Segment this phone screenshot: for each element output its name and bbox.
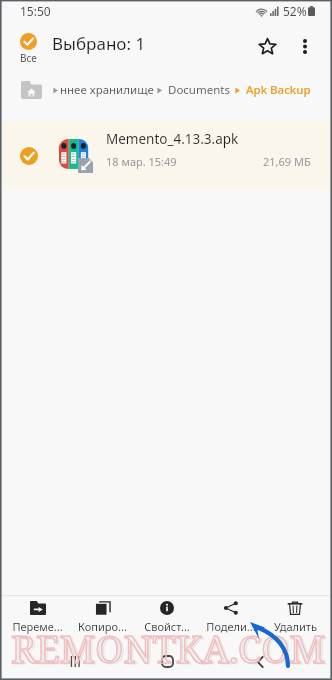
staticText: 18 мар. 15:49 xyxy=(106,154,177,169)
staticText: 15:50 xyxy=(20,3,51,19)
button[interactable]: Recent apps xyxy=(29,646,121,677)
staticText: Свойст... xyxy=(144,619,190,634)
button[interactable]: ннее хранилище xyxy=(60,82,154,98)
button[interactable]: Все xyxy=(12,33,45,65)
button[interactable]: Add to favourites xyxy=(246,22,288,70)
staticText: Копиро... xyxy=(78,619,127,634)
button[interactable]: Apk Backup xyxy=(246,82,311,98)
button[interactable]: Memento_4.13.3.apk xyxy=(0,121,332,190)
button[interactable]: Home xyxy=(121,646,214,677)
button[interactable]: Переме... xyxy=(5,596,70,646)
staticText: 21,69 МБ xyxy=(263,154,311,169)
button[interactable]: Копиро... xyxy=(70,596,135,646)
staticText: 52% xyxy=(283,3,307,19)
staticText: REMONTKA.COM xyxy=(11,622,326,674)
button[interactable]: Home folder xyxy=(21,81,42,99)
button[interactable]: Подели... xyxy=(199,596,263,646)
button[interactable]: More options xyxy=(288,22,322,70)
staticText: Memento_4.13.3.apk xyxy=(106,130,239,148)
button[interactable]: Documents xyxy=(168,82,230,98)
button[interactable]: Свойст... xyxy=(135,596,199,646)
staticText: Переме... xyxy=(12,619,63,634)
staticText: REMONTKA.COM xyxy=(13,623,328,675)
staticText: Подели... xyxy=(206,619,256,634)
button[interactable]: Back xyxy=(214,646,307,677)
staticText: Все xyxy=(20,51,37,65)
button[interactable]: Удалить xyxy=(263,596,327,646)
staticText: Выбрано: 1 xyxy=(52,32,146,55)
staticText: Удалить xyxy=(274,619,317,634)
